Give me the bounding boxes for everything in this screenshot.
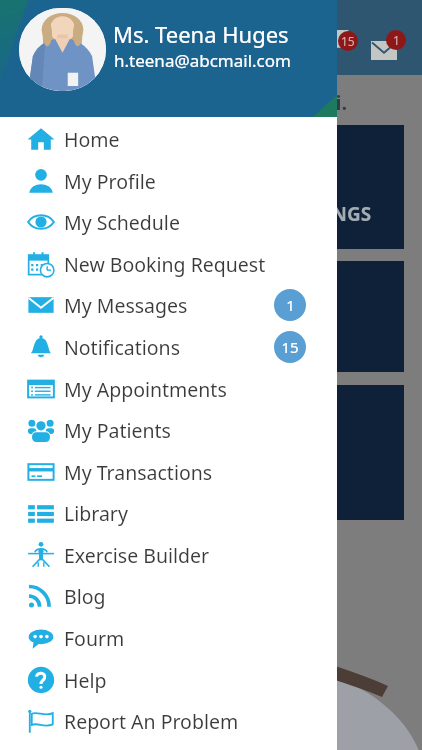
- button[interactable]: Library: [0, 492, 337, 534]
- button[interactable]: My Messages: [0, 284, 337, 326]
- staticText: MY BOOKINGS: [234, 201, 372, 227]
- staticText: 15: [281, 337, 299, 357]
- staticText: Fourm: [64, 625, 125, 652]
- staticText: My Transactions: [64, 459, 213, 486]
- button[interactable]: Fourm: [0, 617, 337, 659]
- staticText: h.teena@abcmail.com: [114, 49, 291, 72]
- staticText: Notifications: [64, 334, 180, 361]
- button[interactable]: Help: [0, 659, 337, 701]
- button[interactable]: Blog: [0, 575, 337, 617]
- staticText: MY PATIENTS: [44, 304, 168, 330]
- staticText: Exercise Builder: [64, 542, 210, 569]
- button[interactable]: Home: [0, 118, 337, 160]
- button[interactable]: Exercise Builder: [0, 534, 337, 576]
- staticText: Report An Problem: [64, 708, 239, 735]
- button[interactable]: New Booking Request: [0, 243, 337, 285]
- button[interactable]: My Schedule: [0, 201, 337, 243]
- staticText: My Patients: [64, 417, 171, 444]
- button[interactable]: Report An Problem: [0, 700, 337, 742]
- button[interactable]: My Transactions: [0, 451, 337, 493]
- staticText: Help: [64, 667, 107, 694]
- staticText: Ms. Teena Huges: [113, 19, 289, 49]
- staticText: My Profile: [64, 168, 156, 195]
- button[interactable]: Notifications: [0, 326, 337, 368]
- staticText: My Appointments: [64, 376, 227, 403]
- button[interactable]: My Appointments: [0, 368, 337, 410]
- staticText: Library: [64, 500, 128, 527]
- button[interactable]: Messages: [312, 28, 350, 62]
- button[interactable]: My Patients: [0, 409, 337, 451]
- staticText: Blog: [64, 583, 106, 610]
- staticText: PHYSIO: [64, 24, 139, 51]
- staticText: 15: [341, 33, 355, 49]
- staticText: My Messages: [64, 292, 188, 319]
- staticText: My Schedule: [64, 209, 180, 236]
- button[interactable]: My Profile: [0, 160, 337, 202]
- staticText: MY SCHEDULE: [44, 440, 177, 466]
- staticText: Home: [64, 126, 120, 153]
- button[interactable]: Mail: [371, 41, 397, 60]
- staticText: 1: [286, 295, 295, 315]
- staticText: Hello Ms.Teena Huges. Welcome Hi.: [0, 89, 348, 116]
- button[interactable]: Menu: [16, 21, 50, 55]
- staticText: New Booking Request: [64, 251, 266, 278]
- staticText: 1: [393, 32, 400, 48]
